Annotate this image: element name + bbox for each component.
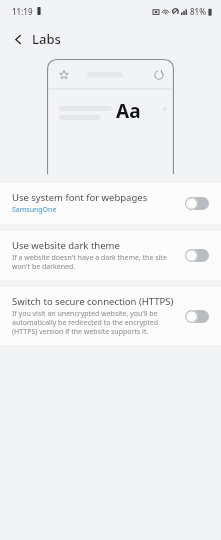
button[interactable]: Toggle off <box>183 246 211 264</box>
staticText: If a website doesn't have a dark theme, … <box>12 253 175 271</box>
button[interactable]: Switch to secure connection (HTTPS) <box>0 287 221 345</box>
staticText: Use website dark theme <box>12 239 120 252</box>
button[interactable]: Back <box>8 29 28 49</box>
staticText: 11:19 <box>12 6 33 17</box>
button[interactable]: Use system font for webpages <box>0 183 221 224</box>
button[interactable]: Toggle off <box>183 307 211 325</box>
staticText: SamsungOne <box>12 205 57 215</box>
staticText: Labs <box>32 30 61 48</box>
staticText: 81% <box>190 6 206 17</box>
staticText: Use system font for webpages <box>12 191 148 204</box>
staticText: Switch to secure connection (HTTPS) <box>12 295 174 308</box>
staticText: Aa <box>116 98 141 124</box>
staticText: If you visit an unencrypted website, you… <box>12 309 175 336</box>
button[interactable]: Use website dark theme <box>0 231 221 280</box>
button[interactable]: Toggle off <box>183 194 211 212</box>
